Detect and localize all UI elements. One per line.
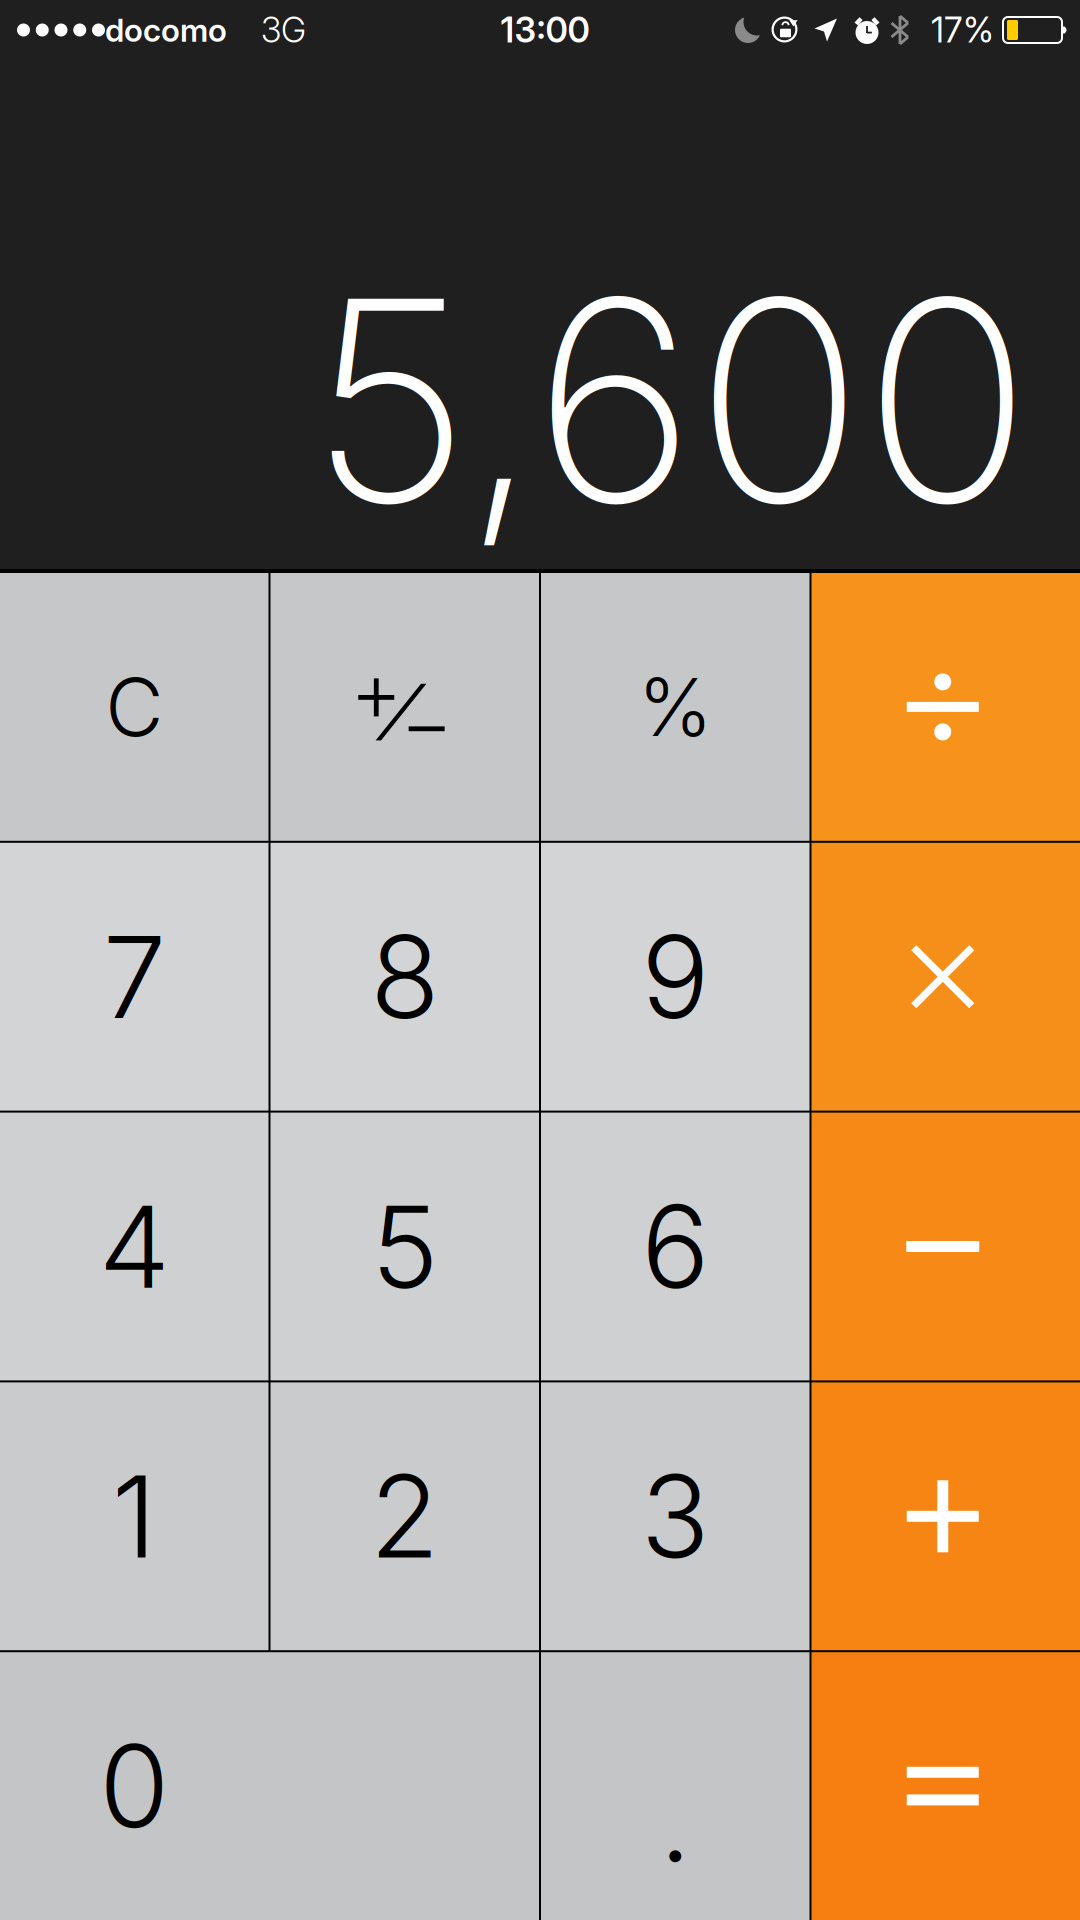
button[interactable]: 2: [270, 1382, 539, 1650]
staticText: C: [105, 658, 163, 755]
staticText: 17%: [931, 9, 994, 51]
staticText: 1: [112, 1448, 157, 1585]
button[interactable]: 7: [0, 843, 268, 1111]
button[interactable]: 8: [270, 843, 539, 1111]
button[interactable]: C: [0, 573, 268, 841]
button[interactable]: %: [541, 573, 809, 841]
button[interactable]: .: [541, 1652, 809, 1920]
button[interactable]: 5: [270, 1113, 539, 1380]
button[interactable]: 4: [0, 1113, 268, 1380]
staticText: 7: [103, 908, 166, 1045]
staticText: 5: [371, 1178, 438, 1315]
staticText: 5,600: [309, 232, 1031, 569]
button[interactable]: 3: [541, 1382, 809, 1650]
staticText: 3: [641, 1448, 710, 1585]
button[interactable]: 6: [541, 1113, 809, 1380]
staticText: 9: [641, 908, 709, 1045]
staticText: 13:00: [500, 9, 589, 51]
staticText: 3G: [261, 9, 306, 51]
staticText: %: [638, 658, 713, 755]
button[interactable]: Add: [811, 1382, 1080, 1650]
button[interactable]: 0: [0, 1652, 539, 1920]
staticText: 6: [641, 1178, 709, 1315]
staticText: 2: [370, 1448, 440, 1585]
button[interactable]: 1: [0, 1382, 268, 1650]
staticText: docomo: [105, 11, 227, 49]
staticText: 0: [99, 1717, 169, 1855]
button[interactable]: 9: [541, 843, 809, 1111]
staticText: 4: [99, 1178, 170, 1315]
button[interactable]: Subtract: [811, 1113, 1080, 1380]
button[interactable]: Divide: [811, 573, 1080, 841]
button[interactable]: Equals: [811, 1652, 1080, 1920]
button[interactable]: Multiply: [811, 843, 1080, 1111]
staticText: 8: [370, 908, 439, 1045]
button[interactable]: Toggle sign: [270, 573, 539, 841]
staticText: .: [659, 1751, 691, 1889]
